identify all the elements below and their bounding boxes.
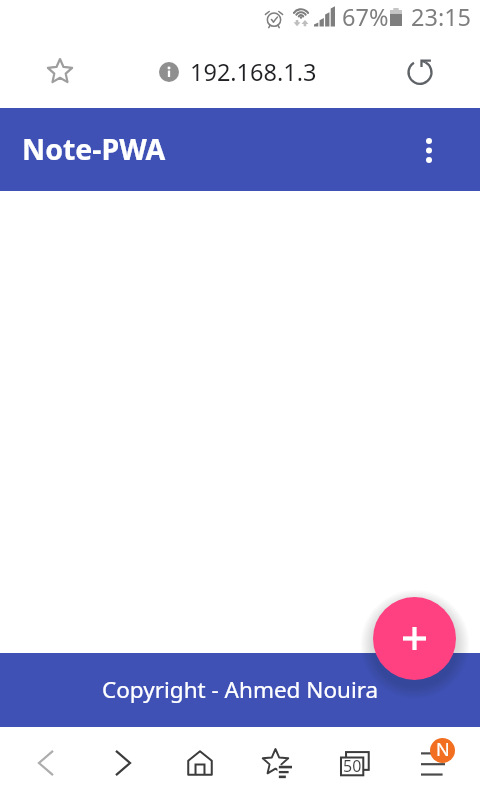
staticText: 67% [342, 1, 389, 33]
button[interactable]: Forward [99, 739, 147, 787]
staticText: 50 [343, 755, 362, 777]
staticText: Copyright - Ahmed Nouira [102, 674, 379, 705]
button[interactable]: More options [406, 127, 452, 173]
button[interactable]: Add note [373, 597, 456, 680]
staticText: 23:15 [411, 1, 472, 33]
button[interactable]: 192.168.1.3 [90, 49, 390, 101]
button[interactable]: Bookmarks [254, 739, 302, 787]
staticText: 192.168.1.3 [190, 56, 317, 88]
button[interactable]: Reload [398, 49, 442, 93]
staticText: N [436, 738, 450, 762]
button[interactable]: Home [176, 739, 224, 787]
button[interactable]: Bookmark [38, 49, 82, 93]
button[interactable]: Back [22, 739, 70, 787]
button[interactable]: Menu [411, 728, 475, 792]
button[interactable]: Tabs [331, 739, 379, 787]
staticText: Note-PWA [22, 130, 166, 169]
